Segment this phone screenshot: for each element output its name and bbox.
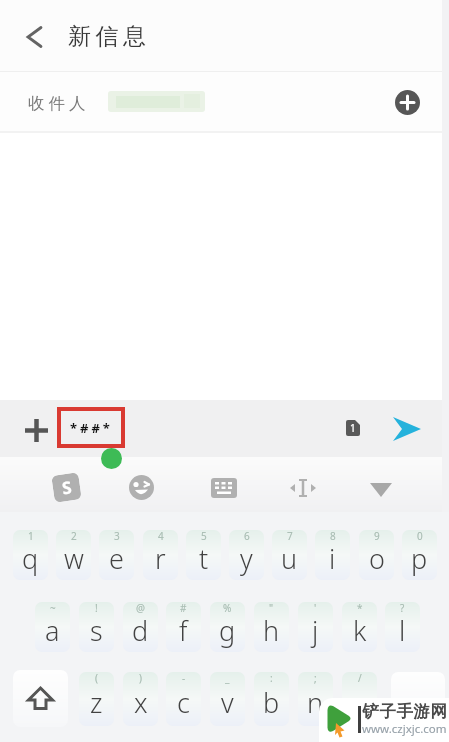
staticText: f bbox=[179, 612, 188, 649]
button[interactable]: ) bbox=[123, 672, 158, 726]
staticText: z bbox=[90, 684, 103, 721]
button[interactable]: " bbox=[254, 602, 289, 652]
staticText: a bbox=[45, 612, 60, 649]
button[interactable]: 0 bbox=[402, 530, 437, 580]
staticText: n bbox=[307, 684, 324, 721]
staticText: 4 bbox=[158, 530, 164, 543]
button[interactable]: *##* bbox=[57, 407, 125, 448]
staticText: x bbox=[134, 684, 148, 721]
staticText: 8 bbox=[330, 530, 336, 543]
button[interactable]: 4 bbox=[143, 530, 178, 580]
staticText: : bbox=[270, 672, 273, 685]
staticText: " bbox=[269, 602, 274, 615]
staticText: ! bbox=[95, 602, 98, 615]
staticText: u bbox=[281, 540, 298, 577]
staticText: 新信息 bbox=[68, 22, 151, 51]
button[interactable]: ; bbox=[298, 672, 333, 726]
staticText: y bbox=[240, 540, 253, 577]
button[interactable] bbox=[395, 90, 420, 115]
button[interactable]: ? bbox=[385, 602, 420, 652]
staticText: m bbox=[347, 684, 372, 721]
staticText: 1 bbox=[350, 421, 356, 435]
staticText: w bbox=[64, 540, 84, 577]
staticText: k bbox=[353, 612, 367, 649]
button[interactable]: 6 bbox=[229, 530, 264, 580]
staticText: * bbox=[357, 602, 363, 615]
staticText: 5 bbox=[201, 530, 207, 543]
staticText: *##* bbox=[70, 419, 113, 437]
button[interactable]: 9 bbox=[359, 530, 394, 580]
staticText: g bbox=[219, 612, 236, 649]
staticText: b bbox=[263, 684, 280, 721]
staticText: 1 bbox=[28, 530, 34, 543]
button[interactable]: 7 bbox=[272, 530, 307, 580]
staticText: l bbox=[399, 612, 406, 649]
staticText: q bbox=[22, 540, 39, 577]
staticText: % bbox=[223, 602, 232, 615]
button[interactable] bbox=[390, 414, 424, 444]
staticText: / bbox=[358, 672, 362, 685]
staticText: ' bbox=[314, 602, 317, 615]
staticText: ? bbox=[400, 602, 405, 615]
button[interactable] bbox=[22, 416, 51, 445]
button[interactable]: 2 bbox=[56, 530, 91, 580]
button[interactable] bbox=[211, 478, 237, 498]
staticText: o bbox=[369, 540, 385, 577]
button[interactable]: ' bbox=[298, 602, 333, 652]
button[interactable]: S bbox=[51, 472, 82, 503]
staticText: 9 bbox=[374, 530, 380, 543]
button[interactable]: % bbox=[210, 602, 245, 652]
staticText: t bbox=[199, 540, 209, 577]
button[interactable]: # bbox=[166, 602, 201, 652]
button[interactable]: 3 bbox=[99, 530, 134, 580]
staticText: s bbox=[90, 612, 103, 649]
button[interactable] bbox=[370, 483, 392, 497]
staticText: - bbox=[182, 672, 186, 685]
staticText: ~ bbox=[50, 602, 56, 615]
staticText: c bbox=[177, 684, 190, 721]
staticText: 6 bbox=[244, 530, 250, 543]
staticText: @ bbox=[136, 602, 145, 615]
staticText: ) bbox=[139, 672, 142, 685]
button[interactable] bbox=[129, 475, 154, 500]
button[interactable]: : bbox=[254, 672, 289, 726]
staticText: _ bbox=[225, 672, 230, 685]
button[interactable] bbox=[391, 672, 445, 726]
staticText: i bbox=[329, 540, 336, 577]
button[interactable] bbox=[13, 670, 68, 727]
staticText: 2 bbox=[71, 530, 77, 543]
button[interactable]: 收件人 bbox=[0, 72, 449, 132]
button[interactable]: ~ bbox=[35, 602, 70, 652]
staticText: j bbox=[312, 612, 319, 649]
staticText: 3 bbox=[114, 530, 120, 543]
button[interactable]: 8 bbox=[315, 530, 350, 580]
staticText: 铲子手游网 bbox=[362, 701, 447, 722]
button[interactable]: 5 bbox=[186, 530, 221, 580]
button[interactable]: - bbox=[166, 672, 201, 726]
staticText: d bbox=[132, 612, 149, 649]
staticText: e bbox=[109, 540, 124, 577]
button[interactable] bbox=[289, 478, 317, 498]
staticText: h bbox=[263, 612, 280, 649]
staticText: r bbox=[155, 540, 166, 577]
button[interactable] bbox=[20, 22, 50, 52]
staticText: 收件人 bbox=[28, 93, 90, 114]
staticText: p bbox=[411, 540, 428, 577]
staticText: ; bbox=[314, 672, 317, 685]
button[interactable]: @ bbox=[123, 602, 158, 652]
button[interactable]: ( bbox=[79, 672, 114, 726]
staticText: # bbox=[180, 602, 187, 615]
staticText: S bbox=[60, 475, 73, 499]
button[interactable]: 1 bbox=[13, 530, 48, 580]
staticText: www.czjxjc.com bbox=[362, 721, 447, 737]
staticText: v bbox=[221, 684, 234, 721]
staticText: 0 bbox=[417, 530, 423, 543]
staticText: 7 bbox=[287, 530, 293, 543]
button[interactable]: / bbox=[342, 672, 377, 726]
button[interactable]: _ bbox=[210, 672, 245, 726]
staticText: ( bbox=[95, 672, 98, 685]
button[interactable]: ! bbox=[79, 602, 114, 652]
button[interactable]: * bbox=[342, 602, 377, 652]
